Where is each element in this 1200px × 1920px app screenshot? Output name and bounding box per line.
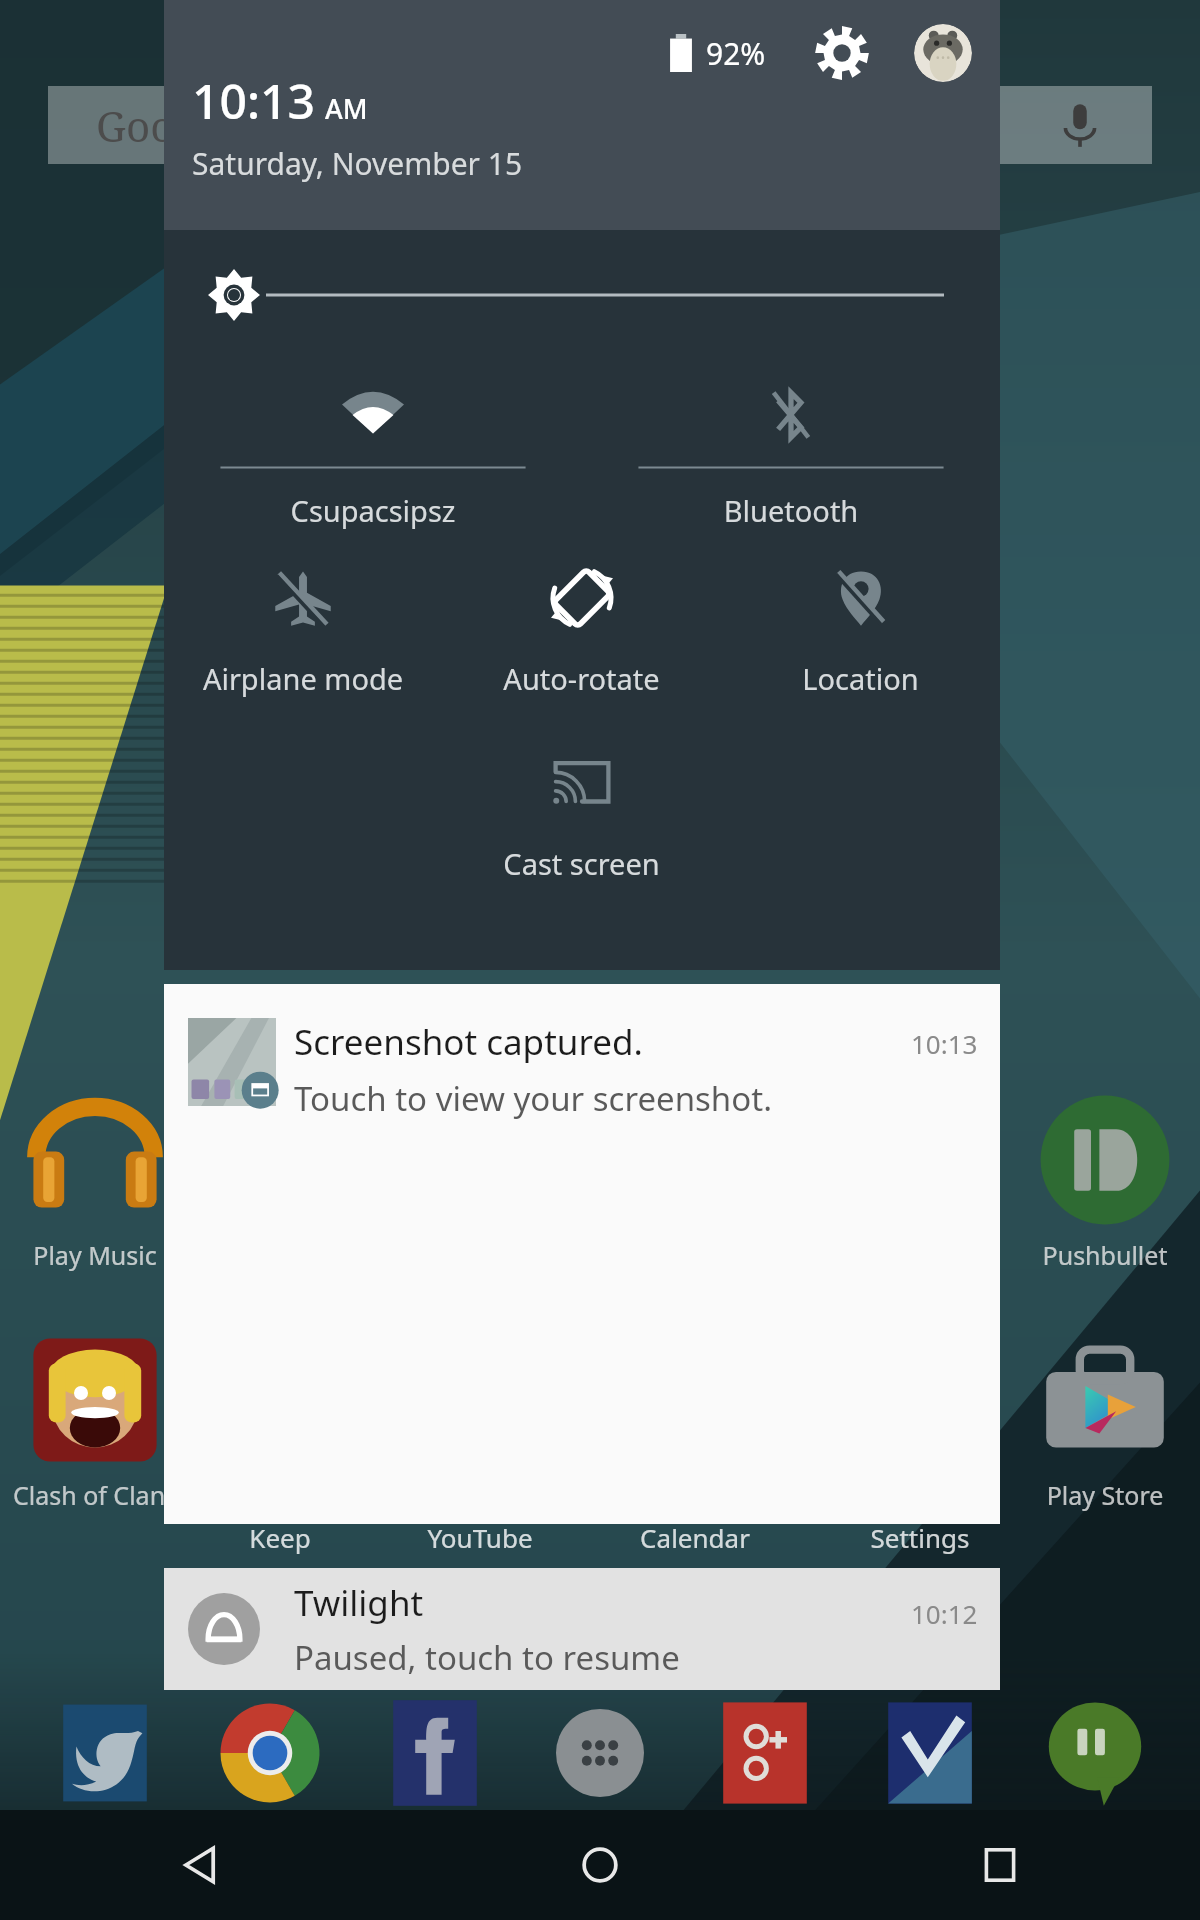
button[interactable]: Google xyxy=(48,86,1152,164)
button[interactable]: Play Music xyxy=(12,1090,178,1272)
button[interactable]: Brightness xyxy=(164,230,1000,360)
button[interactable]: Bluetooth xyxy=(582,360,1000,545)
staticText: Bluetooth xyxy=(582,491,1000,530)
staticText: Pushbullet xyxy=(1022,1238,1188,1272)
staticText: Screenshot captured. xyxy=(294,1018,643,1066)
button[interactable]: App xyxy=(205,1688,335,1818)
button[interactable]: App xyxy=(535,1688,665,1818)
button[interactable]: Recent apps xyxy=(800,1810,1200,1920)
button[interactable]: App xyxy=(40,1688,170,1818)
button[interactable]: App xyxy=(700,1688,830,1818)
staticText: Google xyxy=(96,97,233,154)
button[interactable]: App xyxy=(865,1688,995,1818)
staticText: Cast screen xyxy=(442,844,721,883)
button[interactable]: Back xyxy=(0,1810,400,1920)
staticText: Play Store xyxy=(1022,1478,1188,1512)
staticText: Saturday, November 15 xyxy=(192,143,523,184)
staticText: YouTube xyxy=(400,1520,560,1555)
staticText: Keep xyxy=(200,1520,360,1555)
button[interactable]: Auto-rotate xyxy=(442,545,721,730)
staticText: 92% xyxy=(706,33,766,74)
button[interactable]: Cast screen xyxy=(442,730,721,915)
staticText: Twilight xyxy=(294,1579,424,1627)
button[interactable]: Screenshot captured. xyxy=(164,984,1000,1524)
staticText: Calendar xyxy=(615,1520,775,1555)
button[interactable]: Csupacsipsz xyxy=(164,360,582,545)
button[interactable]: Clash of Clans xyxy=(12,1330,178,1512)
button[interactable]: Twilight xyxy=(164,1568,1000,1690)
button[interactable]: App xyxy=(370,1688,500,1818)
button[interactable]: Voice search xyxy=(1054,99,1106,151)
staticText: Paused, touch to resume xyxy=(294,1635,680,1680)
button[interactable]: Settings xyxy=(814,25,870,81)
button[interactable]: App xyxy=(1030,1688,1160,1818)
staticText: Auto-rotate xyxy=(442,659,721,698)
staticText: Airplane mode xyxy=(164,659,442,698)
staticText: Touch to view your screenshot. xyxy=(294,1076,772,1121)
button[interactable]: Play Store xyxy=(1022,1330,1188,1512)
button[interactable]: Pushbullet xyxy=(1022,1090,1188,1272)
button[interactable]: Location xyxy=(721,545,1000,730)
staticText: Settings xyxy=(840,1520,1000,1555)
staticText: Play Music xyxy=(12,1238,178,1272)
staticText: 10:13 xyxy=(192,68,315,133)
staticText: 10:13 xyxy=(911,1026,978,1061)
staticText: Location xyxy=(721,659,1000,698)
button[interactable]: Airplane mode xyxy=(164,545,442,730)
staticText: 10:12 xyxy=(911,1596,978,1631)
staticText: Clash of Clans xyxy=(12,1478,178,1512)
button[interactable]: Home xyxy=(400,1810,800,1920)
staticText: Csupacsipsz xyxy=(164,491,582,530)
staticText: AM xyxy=(325,90,368,127)
button[interactable]: User profile xyxy=(914,24,972,82)
